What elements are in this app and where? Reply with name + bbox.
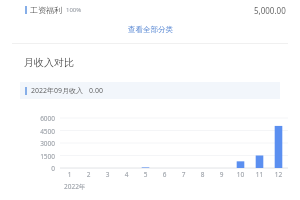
staticText: 3000 [30,139,55,148]
staticText: 2022年 [64,182,86,191]
staticText: 工资福利 [30,5,62,15]
staticText: 6000 [30,114,55,123]
staticText: 2022年09月收入 [31,86,84,96]
staticText: 7 [174,170,193,179]
staticText: 3 [98,170,117,179]
staticText: 12 [269,170,288,179]
staticText: 月收入对比 [24,56,74,69]
staticText: 4 [117,170,136,179]
staticText: 5 [136,170,155,179]
button[interactable]: 查看全部分类 [116,22,185,37]
staticText: 4500 [30,127,55,136]
staticText: 6 [155,170,174,179]
staticText: 11 [250,170,269,179]
staticText: 100% [66,6,82,14]
staticText: 8 [193,170,212,179]
button[interactable]: 2022年09月收入 [20,82,280,99]
staticText: 9 [212,170,231,179]
staticText: 10 [231,170,250,179]
staticText: 5,000.00 [254,5,286,16]
staticText: 1 [60,170,79,179]
staticText: 查看全部分类 [128,25,173,34]
staticText: 0 [30,164,55,173]
button[interactable]: 工资福利 [0,0,300,20]
staticText: 0.00 [89,86,103,96]
staticText: 1500 [30,152,55,161]
staticText: 2 [79,170,98,179]
